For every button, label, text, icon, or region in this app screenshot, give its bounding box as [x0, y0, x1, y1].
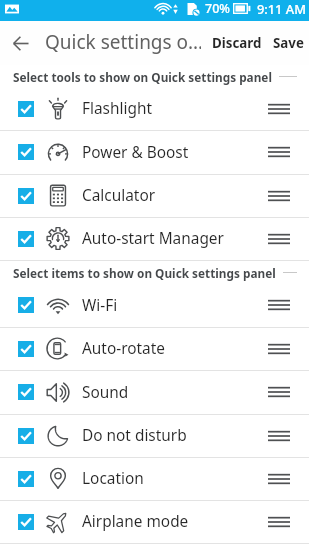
staticText: Calculator	[82, 185, 268, 206]
staticText: Quick settings o…	[45, 29, 204, 55]
staticText: 9:11 AM	[257, 0, 306, 17]
staticText: Do not disturb	[82, 425, 268, 446]
button[interactable]: Back	[0, 21, 41, 65]
button[interactable]: Wi-Fi	[0, 284, 309, 328]
button[interactable]: Sound	[0, 371, 309, 415]
staticText: Select tools to show on Quick settings p…	[13, 69, 272, 85]
button[interactable]: Discard	[201, 21, 266, 65]
staticText: Auto-start Manager	[82, 228, 268, 249]
staticText: Auto-rotate	[82, 338, 268, 359]
staticText: Discard	[212, 34, 262, 52]
staticText: Power & Boost	[82, 142, 268, 163]
staticText: Save	[273, 34, 304, 52]
button[interactable]: Location	[0, 458, 309, 501]
button[interactable]: Auto-rotate	[0, 328, 309, 371]
button[interactable]: Calculator	[0, 175, 309, 218]
button[interactable]: Flashlight	[0, 88, 309, 131]
staticText: Sound	[82, 382, 268, 403]
staticText: Select items to show on Quick settings p…	[13, 265, 276, 281]
staticText: Flashlight	[82, 98, 268, 119]
button[interactable]: Airplane mode	[0, 501, 309, 544]
button[interactable]: Auto-start Manager	[0, 218, 309, 261]
button[interactable]: Power & Boost	[0, 131, 309, 175]
staticText: Wi-Fi	[82, 295, 268, 316]
staticText: Airplane mode	[82, 511, 268, 532]
button[interactable]: Do not disturb	[0, 415, 309, 458]
staticText: Location	[82, 468, 268, 489]
staticText: 70%	[205, 0, 230, 17]
button[interactable]: Save	[266, 21, 309, 65]
